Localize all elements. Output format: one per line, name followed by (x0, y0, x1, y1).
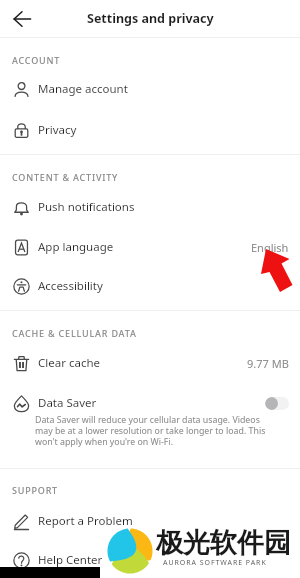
staticText: SUPPORT (12, 484, 58, 496)
button[interactable]: Accessibility (0, 266, 300, 306)
button[interactable]: Privacy (0, 110, 300, 150)
staticText: Data Saver will reduce your cellular dat… (35, 414, 276, 448)
button[interactable]: Data Saver (0, 383, 300, 423)
button[interactable]: Data Saver toggle (265, 397, 289, 410)
staticText: CACHE & CELLULAR DATA (12, 327, 137, 339)
button[interactable]: Help Center (0, 540, 300, 578)
staticText: Help Center (38, 552, 103, 568)
button[interactable]: Back (6, 3, 38, 35)
staticText: Push notifications (38, 199, 135, 215)
staticText: CONTENT & ACTIVITY (12, 171, 119, 183)
staticText: Privacy (38, 122, 77, 138)
staticText: Settings and privacy (87, 10, 214, 27)
staticText: 9.77 MB (247, 356, 289, 371)
button[interactable]: Clear cache (0, 343, 300, 383)
button[interactable]: Manage account (0, 69, 300, 109)
staticText: Clear cache (38, 355, 100, 371)
button[interactable]: Report a Problem (0, 501, 300, 541)
staticText: ACCOUNT (12, 54, 61, 66)
staticText: Data Saver (38, 395, 97, 411)
staticText: AURORA SOFTWARE PARK (163, 558, 267, 568)
staticText: Accessibility (38, 278, 103, 294)
staticText: 极光软件园 (156, 526, 291, 560)
staticText: English (251, 240, 289, 255)
staticText: Report a Problem (38, 513, 133, 529)
button[interactable]: Push notifications (0, 187, 300, 227)
button[interactable]: App language (0, 227, 300, 267)
staticText: Manage account (38, 81, 128, 97)
staticText: App language (38, 239, 114, 255)
